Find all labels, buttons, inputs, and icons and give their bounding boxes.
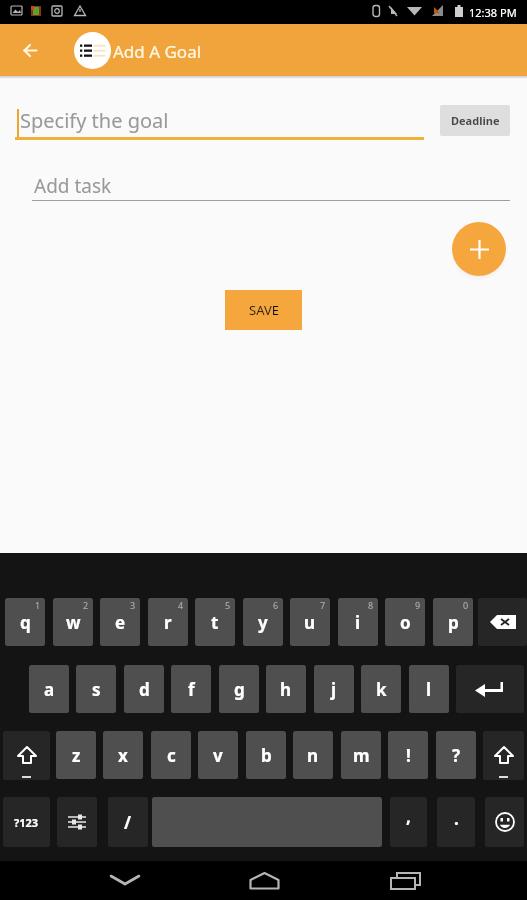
staticText: 3	[130, 599, 136, 611]
staticText: t	[211, 611, 219, 634]
button[interactable]	[483, 731, 524, 780]
button[interactable]: q	[5, 598, 45, 646]
button[interactable]: r	[148, 598, 188, 646]
button[interactable]	[57, 797, 97, 847]
button[interactable]: o	[385, 598, 425, 646]
button[interactable]: h	[266, 665, 306, 713]
staticText: l	[426, 678, 432, 701]
button[interactable]: ?123	[3, 797, 50, 847]
staticText: s	[92, 678, 101, 701]
staticText: ?123	[14, 815, 39, 830]
staticText: c	[167, 744, 176, 767]
staticText: y	[258, 611, 268, 634]
button[interactable]: t	[195, 598, 235, 646]
staticText: 12:38 PM	[469, 5, 517, 20]
staticText: x	[118, 744, 128, 767]
staticText: f	[188, 678, 195, 701]
staticText: SAVE	[249, 301, 279, 319]
button[interactable]	[105, 866, 145, 896]
staticText: 7	[320, 599, 326, 611]
staticText: 9	[415, 599, 421, 611]
staticText: 2	[83, 599, 89, 611]
button[interactable]: s	[76, 665, 116, 713]
staticText: 1	[35, 599, 41, 611]
button[interactable]: b	[246, 731, 286, 779]
button[interactable]	[12, 32, 48, 68]
button[interactable]: w	[53, 598, 93, 646]
button[interactable]: f	[171, 665, 211, 713]
button[interactable]: ?	[436, 731, 476, 779]
staticText: ,	[406, 805, 411, 828]
button[interactable]: u	[290, 598, 330, 646]
staticText: Specify the goal	[20, 107, 169, 134]
button[interactable]: x	[103, 731, 143, 779]
staticText: ?	[452, 744, 461, 767]
button[interactable]: m	[341, 731, 381, 779]
staticText: k	[376, 678, 387, 701]
staticText: d	[139, 678, 150, 701]
staticText: /	[124, 811, 132, 834]
button[interactable]	[456, 665, 524, 713]
staticText: w	[66, 611, 81, 634]
button[interactable]	[244, 866, 284, 896]
staticText: p	[448, 611, 459, 634]
staticText: !	[406, 744, 411, 767]
button[interactable]: /	[108, 797, 148, 847]
button[interactable]: Deadline	[440, 105, 510, 136]
button[interactable]: y	[243, 598, 283, 646]
staticText: r	[164, 611, 172, 634]
button[interactable]: v	[198, 731, 238, 779]
staticText: e	[115, 611, 126, 634]
staticText: i	[355, 611, 361, 634]
staticText: 5	[225, 599, 231, 611]
button[interactable]: i	[338, 598, 378, 646]
button[interactable]: a	[29, 665, 69, 713]
button[interactable]: l	[409, 665, 449, 713]
button[interactable]	[385, 866, 425, 896]
staticText: Add task	[34, 173, 112, 199]
button[interactable]: d	[124, 665, 164, 713]
staticText: .	[454, 807, 459, 830]
button[interactable]: j	[314, 665, 354, 713]
staticText: b	[261, 744, 272, 767]
button[interactable]	[452, 222, 506, 276]
staticText: a	[44, 678, 55, 701]
staticText: 8	[368, 599, 374, 611]
button[interactable]: n	[293, 731, 333, 779]
button[interactable]: g	[219, 665, 259, 713]
button[interactable]: ,	[390, 797, 427, 847]
button[interactable]: .	[437, 797, 475, 847]
staticText: 0	[463, 599, 469, 611]
staticText: z	[72, 744, 81, 767]
button[interactable]: c	[151, 731, 191, 779]
staticText: n	[307, 744, 319, 767]
button[interactable]: p	[433, 598, 473, 646]
button[interactable]	[3, 731, 50, 780]
staticText: 4	[178, 599, 184, 611]
staticText: q	[20, 611, 31, 634]
button[interactable]: k	[361, 665, 401, 713]
staticText: m	[353, 744, 370, 767]
staticText: u	[304, 611, 316, 634]
staticText: j	[331, 678, 337, 701]
button[interactable]: z	[56, 731, 96, 779]
staticText: h	[280, 678, 292, 701]
staticText: Add A Goal	[113, 40, 202, 63]
button[interactable]	[478, 598, 527, 646]
staticText: o	[400, 611, 411, 634]
button[interactable]	[485, 797, 524, 847]
staticText: Deadline	[451, 113, 500, 128]
button[interactable]: SAVE	[225, 290, 302, 330]
staticText: g	[234, 678, 245, 701]
staticText: 6	[273, 599, 279, 611]
staticText: v	[213, 744, 223, 767]
button[interactable]: !	[388, 731, 428, 779]
button[interactable]: e	[100, 598, 140, 646]
